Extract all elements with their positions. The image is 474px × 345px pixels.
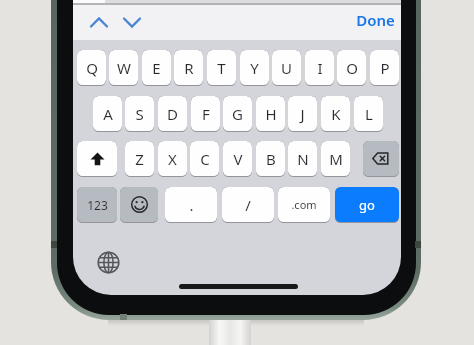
staticText: go <box>359 196 375 214</box>
staticText: B <box>266 149 276 169</box>
button[interactable]: 123 <box>77 187 117 223</box>
staticText: A <box>103 104 113 124</box>
staticText: J <box>300 104 305 124</box>
button[interactable]: R <box>174 50 203 86</box>
staticText: C <box>200 149 210 169</box>
staticText: R <box>184 58 194 78</box>
staticText: Z <box>135 149 144 169</box>
button[interactable]: .com <box>278 187 330 223</box>
button[interactable]: . <box>165 187 217 223</box>
staticText: U <box>281 58 292 78</box>
button[interactable]: O <box>337 50 366 86</box>
staticText: T <box>217 58 226 78</box>
button[interactable]: V <box>223 141 252 177</box>
staticText: O <box>346 58 358 78</box>
staticText: W <box>117 58 131 78</box>
button[interactable]: S <box>125 96 154 132</box>
button[interactable]: J <box>288 96 317 132</box>
button[interactable] <box>77 141 117 177</box>
staticText: Done <box>356 10 395 30</box>
button[interactable] <box>97 251 120 274</box>
button[interactable] <box>89 14 109 32</box>
button[interactable]: Z <box>125 141 154 177</box>
staticText: S <box>135 104 144 124</box>
staticText: / <box>245 195 251 215</box>
button[interactable]: go <box>335 187 399 223</box>
staticText: 123 <box>87 197 108 213</box>
button[interactable]: H <box>256 96 285 132</box>
staticText: X <box>168 149 177 169</box>
button[interactable]: I <box>305 50 334 86</box>
button[interactable]: C <box>190 141 219 177</box>
staticText: N <box>297 149 309 169</box>
button[interactable]: Y <box>240 50 269 86</box>
button[interactable]: W <box>109 50 138 86</box>
staticText: K <box>331 104 341 124</box>
button[interactable]: U <box>272 50 301 86</box>
button[interactable]: X <box>158 141 187 177</box>
button[interactable]: N <box>288 141 317 177</box>
staticText: H <box>265 104 277 124</box>
staticText: E <box>152 58 161 78</box>
staticText: V <box>233 149 243 169</box>
button[interactable]: G <box>223 96 252 132</box>
button[interactable]: / <box>222 187 274 223</box>
button[interactable]: A <box>93 96 122 132</box>
button[interactable] <box>120 187 158 223</box>
button[interactable]: F <box>191 96 220 132</box>
button[interactable]: K <box>321 96 350 132</box>
staticText: Y <box>250 58 259 78</box>
staticText: Q <box>86 58 98 78</box>
staticText: M <box>329 149 343 169</box>
staticText: P <box>380 58 390 78</box>
button[interactable]: Q <box>77 50 106 86</box>
staticText: .com <box>291 197 317 212</box>
button[interactable]: P <box>370 50 399 86</box>
staticText: . <box>189 195 194 215</box>
staticText: I <box>317 58 323 78</box>
staticText: F <box>202 104 210 124</box>
staticText: G <box>232 104 243 124</box>
button[interactable] <box>363 141 399 177</box>
button[interactable]: E <box>142 50 171 86</box>
button[interactable]: T <box>207 50 236 86</box>
button[interactable]: M <box>321 141 350 177</box>
staticText: L <box>365 104 373 124</box>
button[interactable]: L <box>354 96 383 132</box>
button[interactable] <box>122 14 142 32</box>
button[interactable]: Done <box>353 6 397 34</box>
staticText: D <box>167 104 178 124</box>
button[interactable]: D <box>158 96 187 132</box>
button[interactable]: B <box>256 141 285 177</box>
